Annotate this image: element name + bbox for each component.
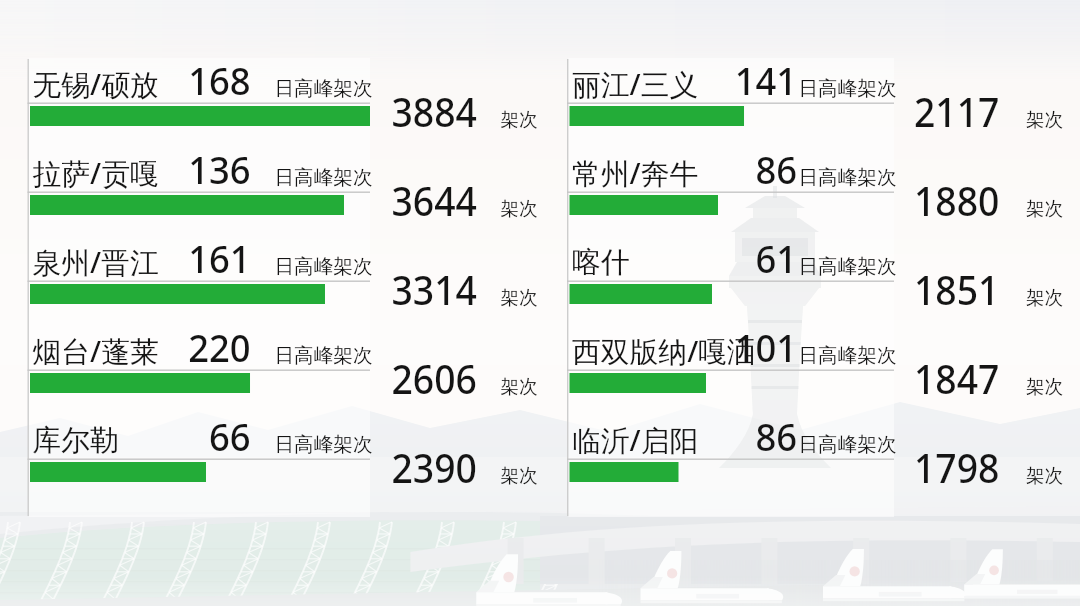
button[interactable]: 机场日高峰架次排行榜 [0, 0, 1080, 606]
